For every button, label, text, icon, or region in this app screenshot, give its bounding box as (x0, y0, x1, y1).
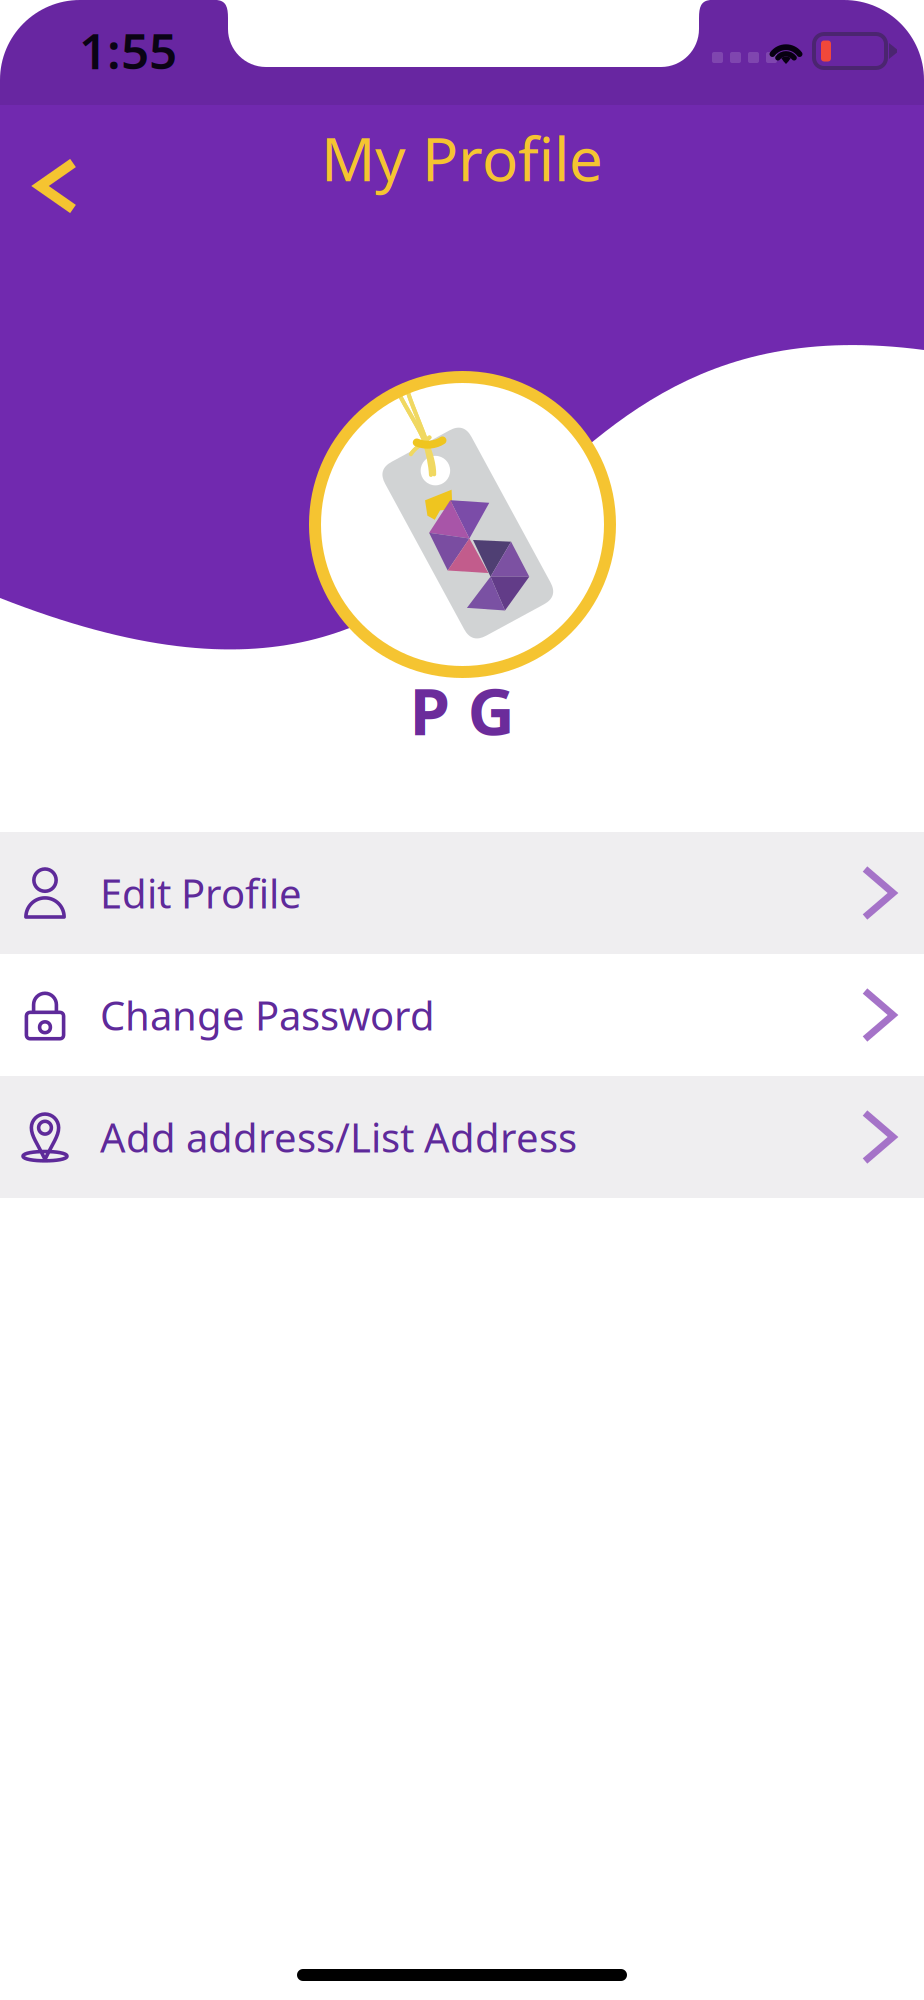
staticText: 1:55 (79, 17, 177, 83)
button[interactable]: Edit Profile (0, 832, 924, 954)
staticText: My Profile (321, 118, 603, 198)
staticText: P G (409, 667, 514, 753)
button[interactable]: Back (14, 137, 99, 235)
staticText: Change Password (100, 988, 435, 1041)
staticText: Add address/List Address (100, 1110, 577, 1163)
button[interactable]: Add address/List Address (0, 1076, 924, 1198)
staticText: Edit Profile (100, 866, 302, 919)
button[interactable]: Change Password (0, 954, 924, 1076)
